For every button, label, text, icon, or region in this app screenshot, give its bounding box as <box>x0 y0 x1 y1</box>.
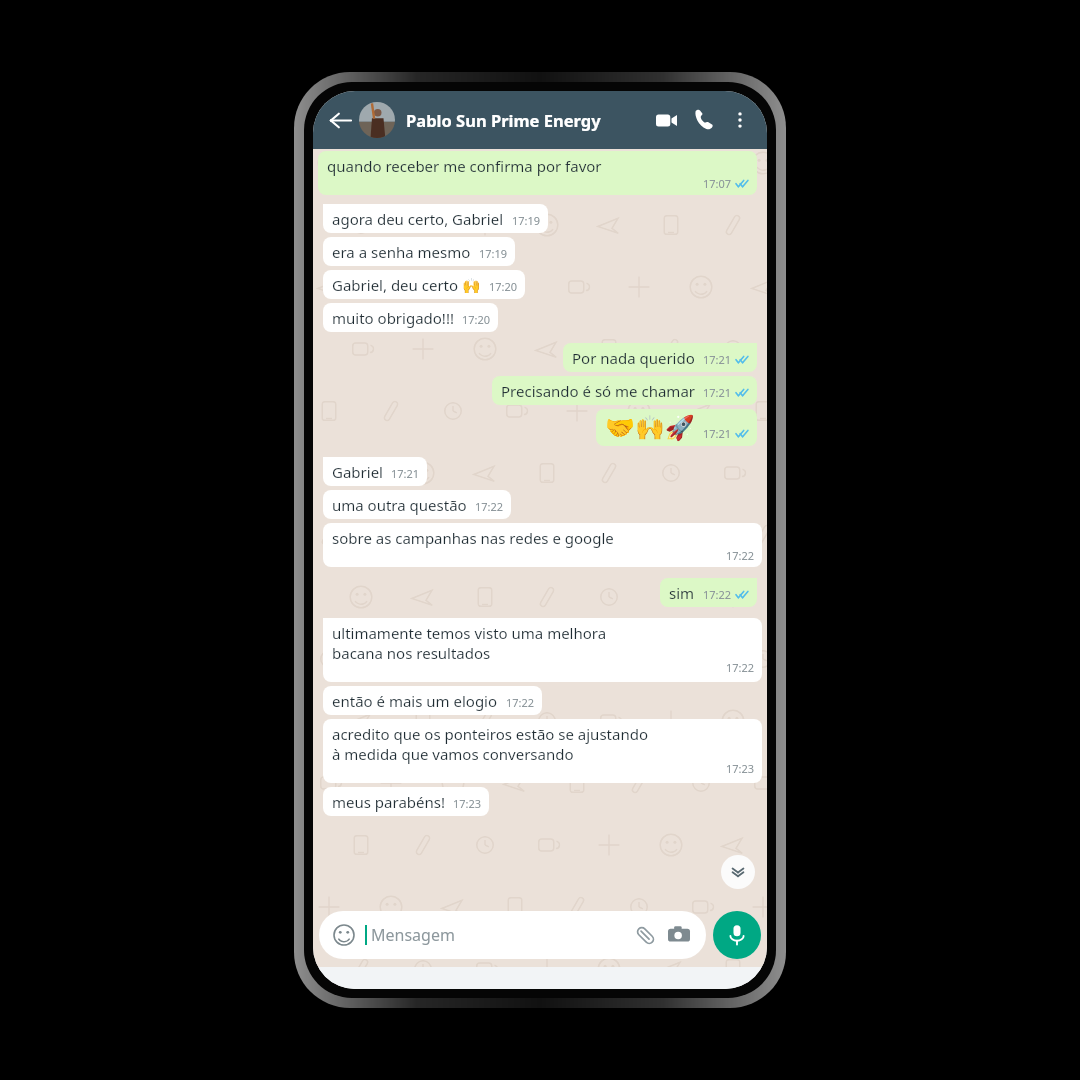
button[interactable]: muito obrigado!!! <box>323 303 498 332</box>
staticText: Gabriel <box>332 462 383 482</box>
button[interactable]: Video call <box>647 101 685 139</box>
button[interactable]: Record voice message <box>713 911 761 959</box>
staticText: 17:19 <box>479 246 508 261</box>
staticText: 17:21 <box>703 385 732 400</box>
staticText: 17:23 <box>726 761 755 776</box>
staticText: uma outra questão <box>332 495 467 515</box>
staticText: 17:21 <box>703 352 732 367</box>
button[interactable]: meus parabéns! <box>323 787 489 816</box>
staticText: 17:20 <box>489 279 518 294</box>
staticText: 17:21 <box>703 426 732 441</box>
staticText: Mensagem <box>371 924 630 946</box>
staticText: Precisando é só me chamar <box>501 381 695 401</box>
button[interactable]: Voice call <box>685 101 723 139</box>
button[interactable]: Por nada querido <box>563 343 757 372</box>
staticText: 17:07 <box>703 176 732 191</box>
staticText: era a senha mesmo <box>332 242 471 262</box>
button[interactable]: acredito que os ponteiros estão se ajust… <box>323 719 762 783</box>
staticText: 17:19 <box>512 213 541 228</box>
staticText: muito obrigado!!! <box>332 308 454 328</box>
button[interactable]: Back <box>323 103 357 137</box>
button[interactable]: quando receber me confirma por favor <box>318 151 757 195</box>
button[interactable]: Profile photo <box>359 102 395 138</box>
button[interactable]: então é mais um elogio <box>323 686 542 715</box>
staticText: quando receber me confirma por favor <box>327 156 602 176</box>
button[interactable]: era a senha mesmo <box>323 237 515 266</box>
staticText: Gabriel, deu certo 🙌 <box>332 275 481 295</box>
staticText: sobre as campanhas nas redes e google <box>332 528 614 548</box>
button[interactable]: More options <box>723 103 757 137</box>
button[interactable]: sim <box>660 578 757 607</box>
staticText: então é mais um elogio <box>332 691 498 711</box>
staticText: 17:22 <box>506 695 535 710</box>
staticText: 🤝🙌🚀 <box>605 414 695 442</box>
button[interactable]: ultimamente temos visto uma melhora baca… <box>323 618 762 682</box>
staticText: Pablo Sun Prime Energy <box>406 109 601 131</box>
staticText: agora deu certo, Gabriel <box>332 209 504 229</box>
staticText: 17:22 <box>726 548 755 563</box>
staticText: 17:22 <box>475 499 504 514</box>
button[interactable]: 🤝🙌🚀 <box>596 409 757 446</box>
staticText: 17:21 <box>391 466 420 481</box>
button[interactable]: Precisando é só me chamar <box>492 376 757 405</box>
button[interactable]: Gabriel, deu certo 🙌 <box>323 270 525 299</box>
staticText: 17:23 <box>453 796 482 811</box>
staticText: 17:20 <box>462 312 491 327</box>
button[interactable]: uma outra questão <box>323 490 511 519</box>
staticText: sim <box>669 583 695 603</box>
button[interactable]: Camera <box>664 920 694 950</box>
button[interactable]: Attach <box>630 920 660 950</box>
staticText: 17:22 <box>703 587 732 602</box>
staticText: Por nada querido <box>572 348 695 368</box>
staticText: meus parabéns! <box>332 792 445 812</box>
button[interactable]: Emoji <box>319 911 706 959</box>
button[interactable]: Emoji <box>331 922 357 948</box>
button[interactable]: Scroll to bottom <box>721 855 755 889</box>
staticText: ultimamente temos visto uma melhora baca… <box>332 623 607 663</box>
button[interactable]: agora deu certo, Gabriel <box>323 204 548 233</box>
staticText: acredito que os ponteiros estão se ajust… <box>332 724 648 764</box>
button[interactable]: Gabriel <box>323 457 427 486</box>
button[interactable]: sobre as campanhas nas redes e google <box>323 523 762 567</box>
staticText: 17:22 <box>726 660 755 675</box>
button[interactable]: Pablo Sun Prime Energy <box>406 109 647 131</box>
